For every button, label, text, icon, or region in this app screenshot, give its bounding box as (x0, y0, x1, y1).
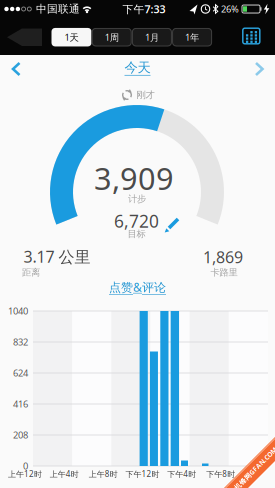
button[interactable] (163, 213, 181, 233)
staticText: 1月 (145, 31, 159, 43)
button[interactable]: 刚才 (114, 87, 160, 102)
staticText: 3.17 公里 (23, 246, 90, 267)
staticText: 1年 (185, 31, 199, 43)
staticText: 1040 (8, 305, 28, 317)
button[interactable]: 1天 (51, 28, 91, 46)
button[interactable] (252, 61, 265, 76)
staticText: 中国联通 (36, 2, 80, 15)
staticText: 下午4时 (167, 469, 196, 479)
button[interactable]: 1月 (132, 28, 172, 46)
staticText: 点赞&评论 (109, 279, 166, 295)
button[interactable]: 点赞&评论 (109, 279, 166, 295)
staticText: 1天 (64, 31, 78, 43)
button[interactable] (0, 0, 44, 52)
staticText: 距离 (22, 267, 40, 278)
staticText: 刚才 (136, 89, 154, 101)
button[interactable]: 1周 (92, 28, 132, 46)
staticText: 1周 (105, 31, 119, 43)
staticText: 1,869 (203, 246, 243, 268)
staticText: 416 (13, 398, 28, 410)
staticText: 下午12时 (125, 469, 159, 479)
staticText: 0 (23, 460, 28, 472)
staticText: 3,909 (94, 158, 174, 198)
button[interactable] (10, 61, 23, 76)
staticText: 上午12时 (8, 469, 42, 479)
button[interactable]: 1年 (172, 28, 212, 46)
staticText: 832 (13, 336, 28, 348)
staticText: 计步 (128, 193, 146, 205)
button[interactable]: 6,720 (114, 209, 159, 232)
staticText: 6,720 (114, 209, 159, 232)
staticText: 下午7:33 (122, 2, 165, 16)
button[interactable]: 今天 (124, 59, 150, 76)
staticText: 目标 (127, 228, 145, 240)
staticText: 机锋网GFAN.COM (227, 464, 275, 473)
staticText: 上午8时 (89, 469, 118, 479)
staticText: 今天 (124, 59, 150, 76)
staticText: 624 (13, 367, 28, 379)
staticText: 卡路里 (210, 267, 237, 278)
staticText: 26% (221, 3, 239, 15)
staticText: 上午4时 (50, 469, 79, 479)
staticText: 208 (13, 429, 28, 441)
button[interactable] (240, 26, 262, 46)
staticText: 下午8时 (206, 469, 235, 479)
